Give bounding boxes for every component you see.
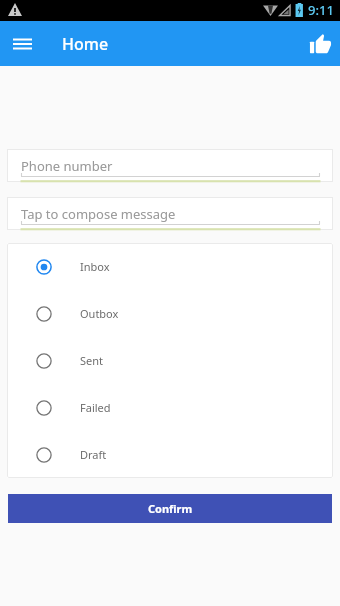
staticText: Home [62, 33, 109, 55]
staticText: Confirm [148, 501, 193, 516]
button[interactable]: Like [303, 27, 337, 61]
staticText: Tap to compose message [21, 205, 176, 223]
button[interactable]: Sent [7, 337, 333, 384]
staticText: Phone number [21, 157, 113, 175]
staticText: Inbox [80, 259, 110, 274]
staticText: Draft [80, 447, 107, 462]
staticText: 9:11 [308, 1, 334, 19]
staticText: Failed [80, 400, 111, 415]
button[interactable]: Draft [7, 431, 333, 478]
button[interactable]: Failed [7, 384, 333, 431]
button[interactable]: Phone number [7, 149, 333, 182]
button[interactable]: Confirm [8, 494, 332, 523]
button[interactable]: Tap to compose message [7, 197, 333, 230]
staticText: Sent [80, 353, 104, 368]
button[interactable]: Outbox [7, 290, 333, 337]
button[interactable]: Open navigation menu [5, 27, 39, 61]
button[interactable]: Inbox [7, 243, 333, 290]
staticText: Outbox [80, 306, 119, 321]
